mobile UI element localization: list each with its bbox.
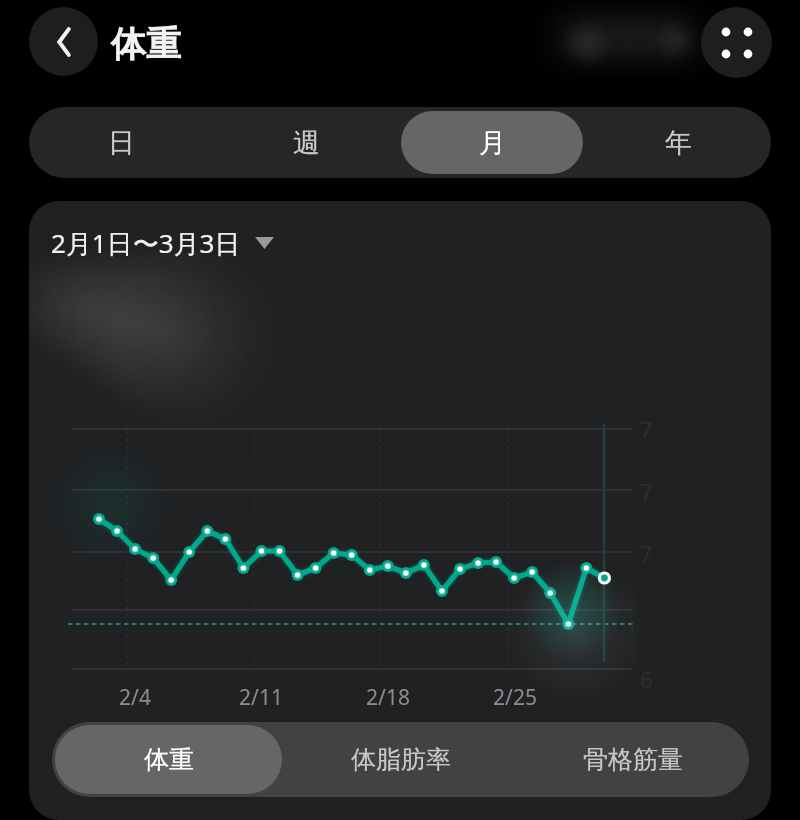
button[interactable]: 年 — [587, 111, 769, 174]
staticText: 2/4 — [95, 683, 175, 712]
button[interactable]: 体脂肪率 — [288, 725, 514, 794]
staticText: 体重 — [111, 22, 181, 66]
staticText: 年 — [665, 126, 692, 160]
button[interactable]: 週 — [216, 111, 397, 174]
button[interactable]: More options — [701, 7, 772, 78]
staticText: 7 — [640, 538, 653, 568]
staticText: 2/11 — [221, 683, 301, 712]
button[interactable]: 日 — [31, 111, 212, 174]
staticText: 体脂肪率 — [351, 744, 451, 775]
staticText: 2月1日〜3月3日 — [51, 225, 241, 261]
staticText: 日 — [108, 126, 135, 160]
button[interactable]: 月 — [401, 111, 583, 174]
staticText: 体重 — [144, 744, 194, 775]
button[interactable]: 体重 — [55, 725, 282, 794]
staticText: 6 — [640, 664, 653, 694]
button[interactable]: 骨格筋量 — [520, 725, 746, 794]
button[interactable]: Back — [29, 7, 98, 76]
staticText: 7 — [640, 414, 653, 444]
staticText: 7 — [640, 476, 653, 506]
staticText: 月 — [479, 126, 506, 160]
staticText: 週 — [293, 126, 320, 160]
staticText: 骨格筋量 — [583, 744, 683, 775]
staticText: 2/25 — [475, 683, 555, 712]
staticText: 2/18 — [348, 683, 428, 712]
button[interactable]: 2月1日〜3月3日 — [51, 225, 274, 261]
